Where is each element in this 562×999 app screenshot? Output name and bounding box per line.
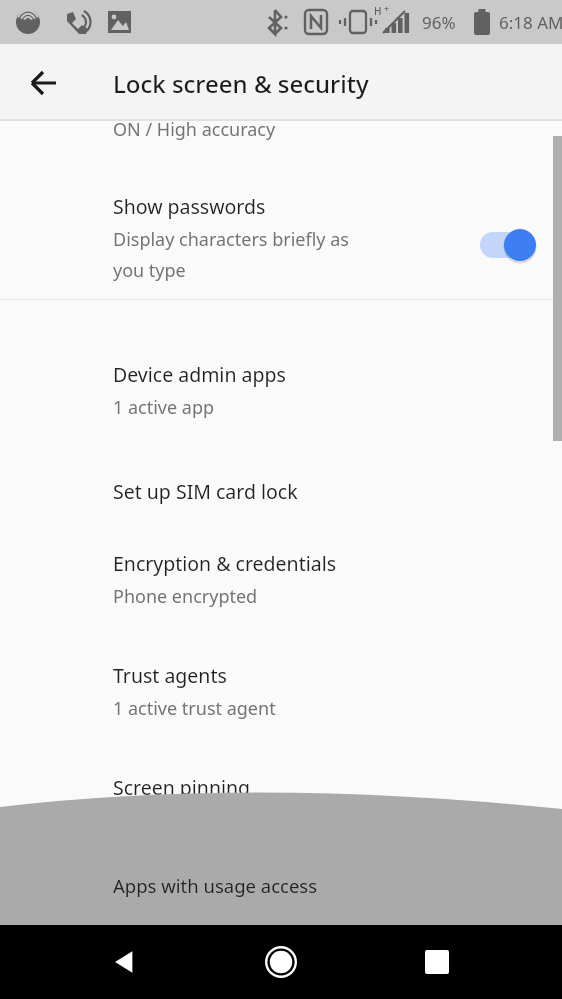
- button[interactable]: Show passwords: [0, 172, 562, 300]
- staticText: +: [384, 2, 390, 14]
- staticText: H: [374, 4, 382, 18]
- button[interactable]: Encryption & credentials: [0, 531, 562, 631]
- button[interactable]: Back: [19, 59, 67, 107]
- button[interactable]: Home: [247, 928, 315, 996]
- staticText: Display characters briefly as: [113, 227, 349, 252]
- staticText: 1 active trust agent: [113, 696, 276, 721]
- staticText: Device admin apps: [113, 361, 286, 388]
- button[interactable]: Recent apps: [403, 928, 471, 996]
- button[interactable]: Back: [90, 928, 158, 996]
- button[interactable]: Screen pinning: [0, 755, 562, 855]
- button[interactable]: Set up SIM card lock: [0, 459, 562, 527]
- staticText: Apps with usage access: [113, 873, 318, 898]
- staticText: Encryption & credentials: [113, 550, 337, 577]
- staticText: Show passwords: [113, 193, 266, 220]
- staticText: Lock screen & security: [113, 67, 369, 100]
- button[interactable]: Trust agents: [0, 643, 562, 743]
- button[interactable]: Device admin apps: [0, 342, 562, 442]
- staticText: ON / High accuracy: [113, 117, 276, 142]
- staticText: Set up SIM card lock: [113, 478, 298, 505]
- staticText: 1 active app: [113, 395, 215, 420]
- staticText: you type: [113, 258, 186, 283]
- staticText: 96%: [422, 11, 456, 34]
- staticText: Screen pinning: [113, 774, 251, 801]
- staticText: 6:18 AM: [499, 11, 562, 34]
- staticText: Phone encrypted: [113, 584, 258, 609]
- staticText: Trust agents: [113, 662, 227, 689]
